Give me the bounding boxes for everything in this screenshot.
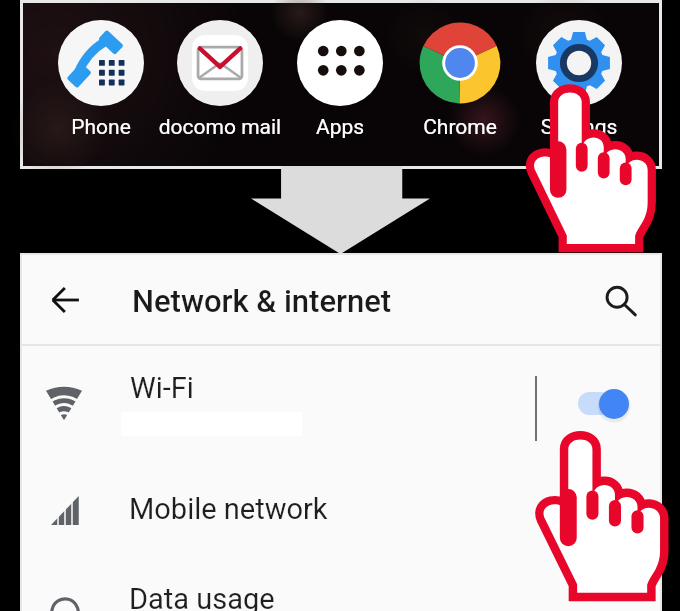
button[interactable]: Chrome	[380, 7, 540, 147]
button[interactable]: Search	[594, 275, 648, 329]
staticText: Phone	[21, 115, 181, 140]
staticText: Data usage	[129, 582, 275, 611]
staticText: Network & internet	[132, 283, 392, 319]
button[interactable]: Wi-Fi	[22, 346, 660, 470]
button[interactable]: Data usage	[22, 570, 660, 611]
button[interactable]: Apps	[260, 7, 420, 147]
staticText: docomo mail	[140, 115, 300, 140]
button[interactable]: Settings	[499, 7, 659, 147]
button[interactable]: Phone	[21, 7, 181, 147]
button[interactable]: Wi-Fi switch	[572, 374, 662, 426]
staticText: Mobile network	[129, 492, 328, 526]
staticText: Wi-Fi	[130, 371, 194, 405]
staticText: Apps	[260, 115, 420, 140]
button[interactable]: Mobile network	[22, 470, 660, 590]
button[interactable]: Back	[39, 273, 93, 327]
button[interactable]: docomo mail	[140, 7, 300, 147]
staticText: Chrome	[380, 115, 540, 140]
staticText: Settings	[499, 115, 659, 140]
